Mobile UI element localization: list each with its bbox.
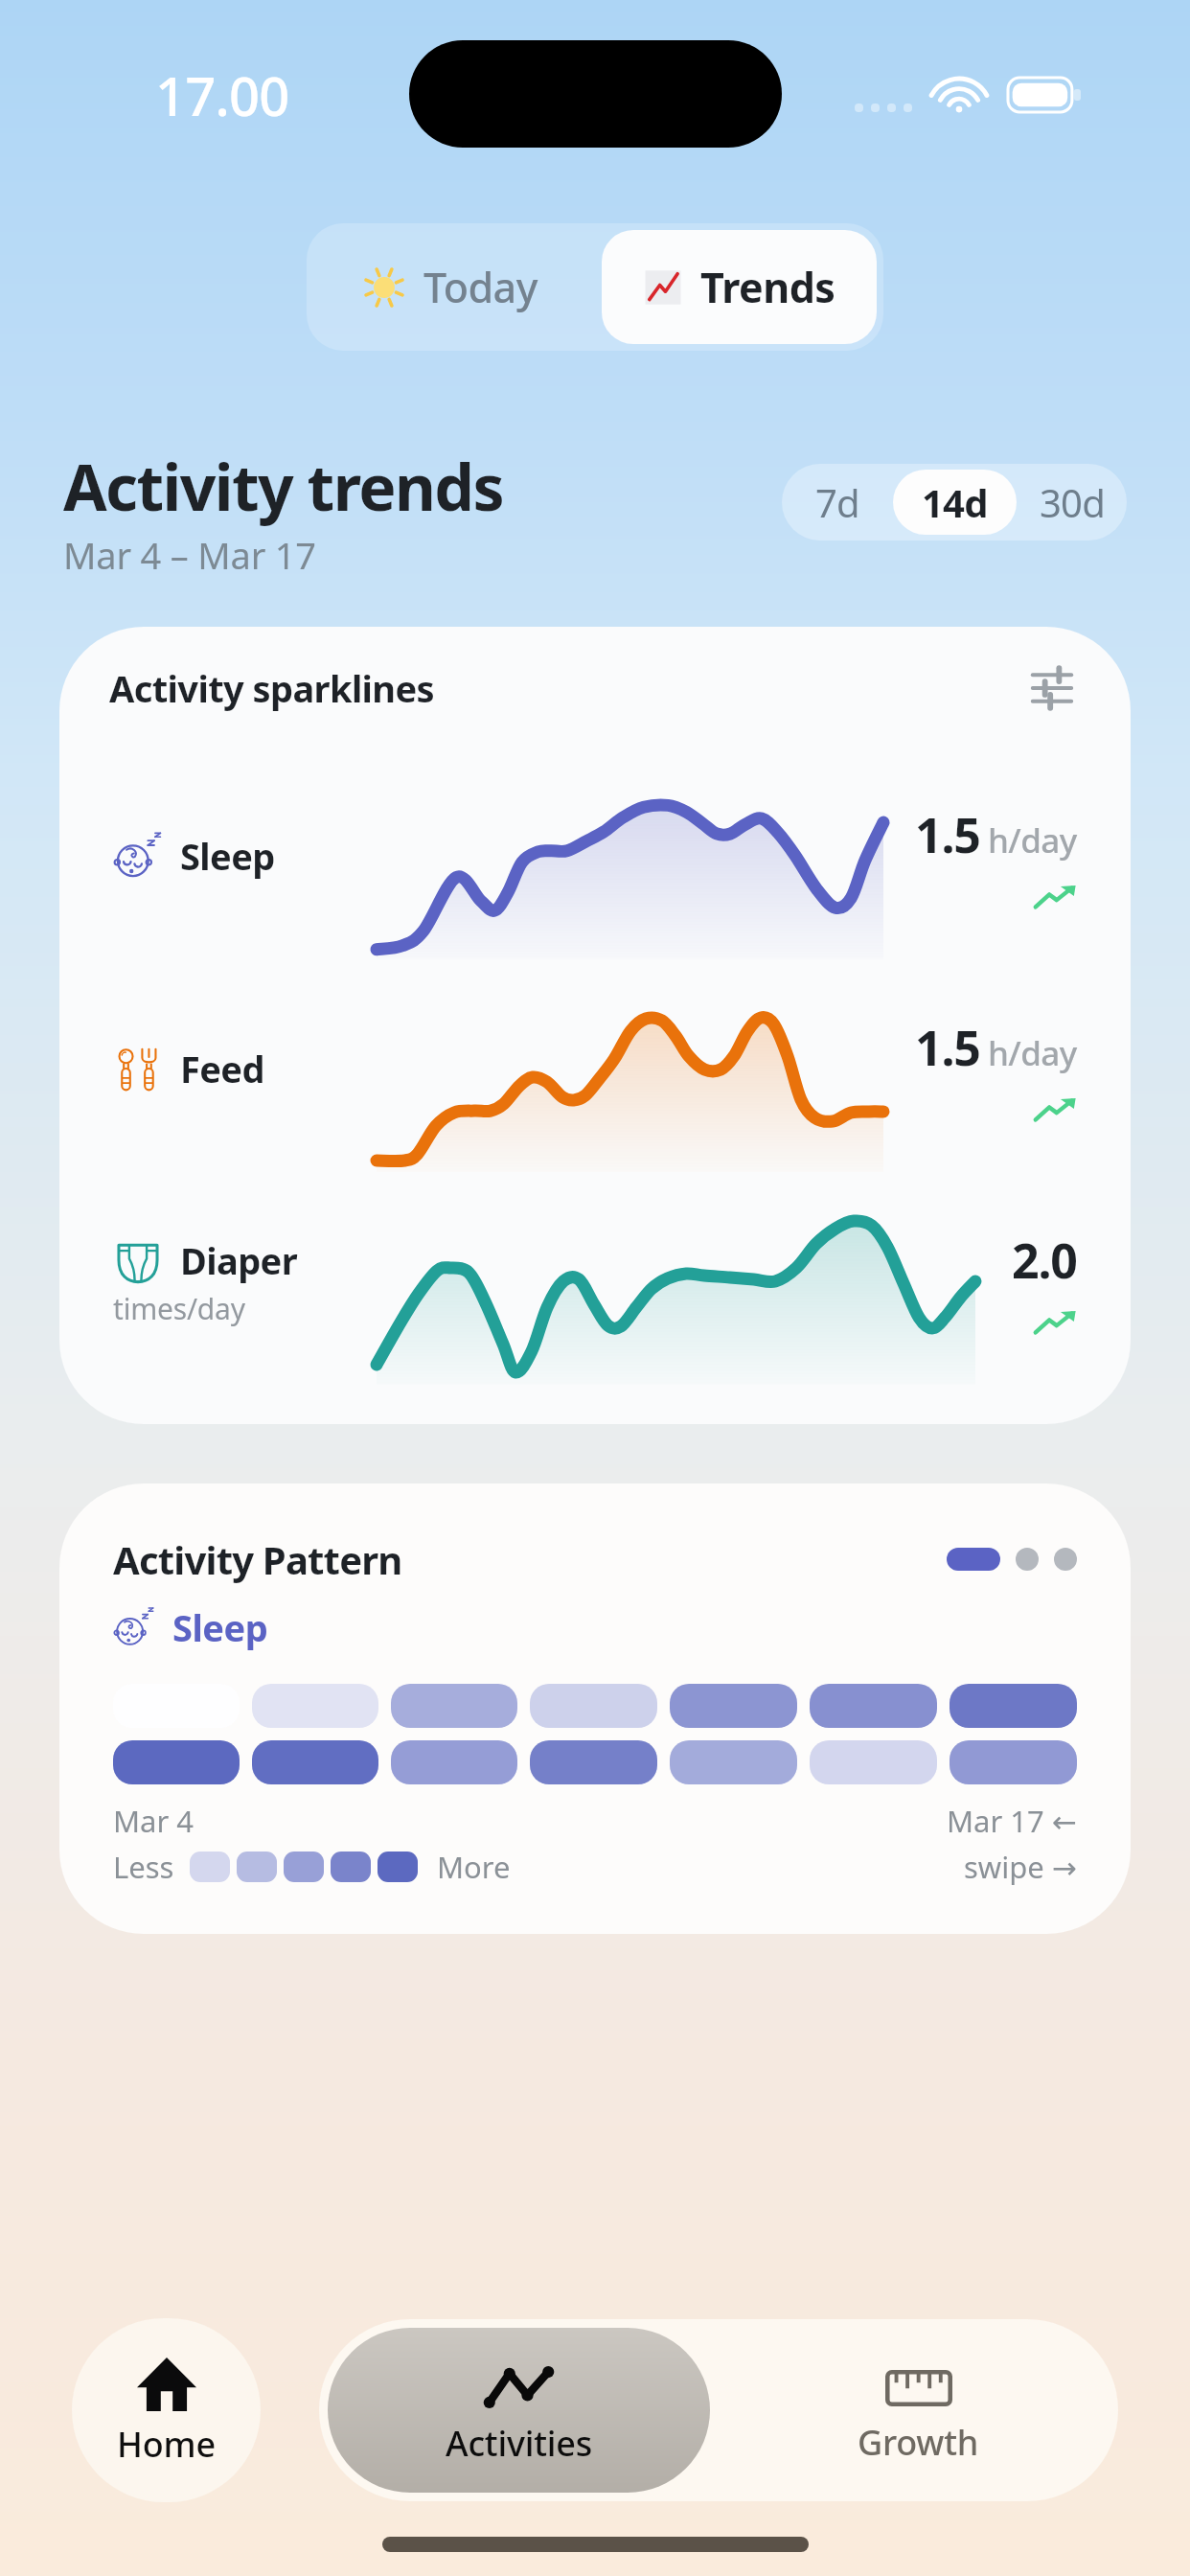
staticText: 30d — [1040, 476, 1105, 528]
staticText: Trends — [700, 259, 835, 315]
button[interactable]: 7d — [782, 464, 893, 540]
button[interactable]: Trends — [602, 230, 877, 344]
staticText: Mar 17 ← — [947, 1801, 1077, 1841]
staticText: Diaper — [180, 1235, 298, 1285]
staticText: Growth — [858, 2419, 979, 2466]
staticText: Activities — [446, 2420, 593, 2467]
staticText: Today — [423, 259, 538, 315]
staticText: Sleep — [180, 831, 275, 881]
staticText: Mar 4 — [113, 1801, 195, 1841]
staticText: Activity trends — [63, 443, 503, 529]
staticText: Feed — [180, 1044, 264, 1093]
staticText: 17.00 — [155, 58, 289, 131]
button[interactable]: 14d — [893, 470, 1017, 535]
staticText: Activity sparklines — [109, 663, 1016, 713]
button[interactable]: 30d — [1017, 464, 1127, 540]
button[interactable]: Activities — [328, 2328, 710, 2493]
staticText: Mar 4 – Mar 17 — [63, 530, 316, 569]
button[interactable]: Diaper — [59, 1175, 1131, 1388]
staticText: times/day — [113, 1289, 245, 1328]
staticText: 1.5 — [915, 1015, 980, 1080]
staticText: 1.5 — [915, 802, 980, 867]
staticText: h/day — [988, 1030, 1077, 1076]
button[interactable]: Today — [307, 223, 595, 351]
button[interactable]: Feed — [59, 962, 1131, 1175]
button[interactable]: Home — [72, 2318, 261, 2502]
staticText: Activity Pattern — [113, 1533, 402, 1585]
staticText: 14d — [922, 476, 988, 528]
staticText: 7d — [815, 476, 859, 528]
staticText: Less — [113, 1847, 174, 1887]
staticText: More — [437, 1847, 511, 1887]
button[interactable]: Growth — [719, 2319, 1118, 2501]
staticText: swipe → — [964, 1847, 1077, 1887]
button[interactable]: Sleep — [59, 749, 1131, 962]
staticText: h/day — [988, 817, 1077, 863]
staticText: Sleep — [172, 1602, 268, 1652]
button[interactable]: Chart settings — [1016, 652, 1088, 724]
staticText: Home — [117, 2421, 216, 2468]
staticText: 2.0 — [1012, 1228, 1077, 1293]
